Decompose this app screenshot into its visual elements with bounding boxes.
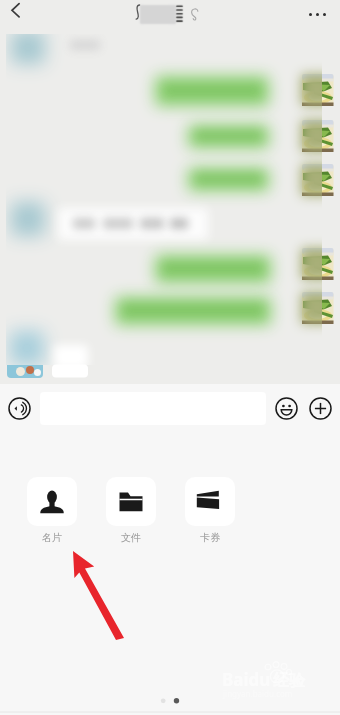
staticText: 名片 <box>42 531 62 544</box>
staticText: 卡券 <box>200 531 220 544</box>
button[interactable]: Add attachment <box>309 397 332 420</box>
button[interactable]: More options <box>302 7 332 22</box>
button[interactable]: 文件 <box>106 477 156 544</box>
button[interactable]: Emoji <box>275 397 298 420</box>
other: Muted <box>188 7 202 21</box>
button[interactable]: Voice message <box>8 397 31 420</box>
button[interactable]: Back <box>4 0 32 28</box>
button[interactable]: 卡券 <box>185 477 235 544</box>
staticText: 文件 <box>121 531 141 544</box>
button[interactable]: 名片 <box>27 477 77 544</box>
